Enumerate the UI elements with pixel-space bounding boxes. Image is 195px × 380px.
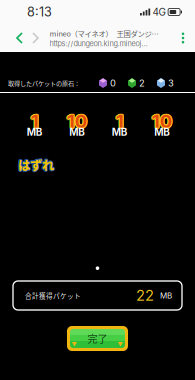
staticText: 10 xyxy=(67,111,88,133)
staticText: 1 xyxy=(116,109,124,131)
staticText: 10 xyxy=(151,109,172,131)
staticText: 3 xyxy=(168,77,174,89)
staticText: はずれ xyxy=(17,156,53,174)
staticText: 1 xyxy=(116,110,124,133)
staticText: MB xyxy=(112,126,128,138)
staticText: 1 xyxy=(116,111,124,133)
staticText: 1 xyxy=(115,110,123,132)
staticText: 1 xyxy=(31,110,39,133)
staticText: https://dungeon.king.mineoj… xyxy=(49,39,147,48)
staticText: 1 xyxy=(116,110,124,132)
button[interactable]: Menu xyxy=(176,27,190,49)
staticText: 10 xyxy=(66,110,87,133)
staticText: はずれ xyxy=(17,155,53,173)
staticText: 10 xyxy=(152,110,173,132)
staticText: 10 xyxy=(67,109,88,131)
staticText: 1 xyxy=(32,110,40,132)
staticText: はずれ xyxy=(19,156,55,174)
staticText: 10 xyxy=(152,109,173,131)
staticText: 1 xyxy=(117,110,125,132)
button[interactable]: Back xyxy=(11,26,27,50)
staticText: 10 xyxy=(67,110,88,133)
staticText: 0 xyxy=(110,77,116,89)
staticText: 10 xyxy=(67,109,88,131)
staticText: はずれ xyxy=(19,157,55,174)
staticText: 1 xyxy=(31,109,39,131)
staticText: 1 xyxy=(31,111,39,133)
button[interactable]: 完了 xyxy=(67,326,128,351)
staticText: MB xyxy=(27,126,43,138)
staticText: 10 xyxy=(67,110,88,132)
staticText: 8:13 xyxy=(27,4,52,20)
staticText: mineo（マイネオ） 王国ダンジ… xyxy=(49,28,158,39)
staticText: MB xyxy=(69,126,85,138)
staticText: はずれ xyxy=(18,156,54,174)
staticText: 10 xyxy=(66,110,87,132)
staticText: 1 xyxy=(31,110,39,132)
staticText: 10 xyxy=(152,110,173,133)
staticText: 1 xyxy=(115,109,123,131)
staticText: はずれ xyxy=(18,157,54,175)
staticText: 1 xyxy=(30,109,38,131)
staticText: 10 xyxy=(151,110,172,132)
staticText: 2 xyxy=(139,77,145,89)
staticText: 取得したパケットの原石： xyxy=(8,79,80,87)
staticText: はずれ xyxy=(17,157,53,174)
staticText: 合計獲得パケット xyxy=(25,291,81,300)
staticText: MB xyxy=(154,126,170,138)
staticText: 22 xyxy=(136,287,154,304)
staticText: 1 xyxy=(30,110,38,132)
staticText: 10 xyxy=(151,110,172,133)
staticText: 10 xyxy=(66,109,87,131)
staticText: 1 xyxy=(115,110,123,133)
staticText: 10 xyxy=(153,110,174,132)
staticText: MB xyxy=(160,291,172,300)
staticText: 1 xyxy=(116,109,124,131)
staticText: はずれ xyxy=(19,155,55,173)
staticText: 10 xyxy=(152,109,173,131)
button[interactable]: Forward xyxy=(27,26,43,50)
staticText: 完了 xyxy=(87,331,107,346)
staticText: 4G xyxy=(153,6,166,18)
staticText: 10 xyxy=(152,111,173,133)
staticText: 1 xyxy=(31,109,39,131)
staticText: 10 xyxy=(68,110,89,132)
staticText: はずれ xyxy=(18,155,54,173)
staticText: 1 xyxy=(30,110,38,133)
